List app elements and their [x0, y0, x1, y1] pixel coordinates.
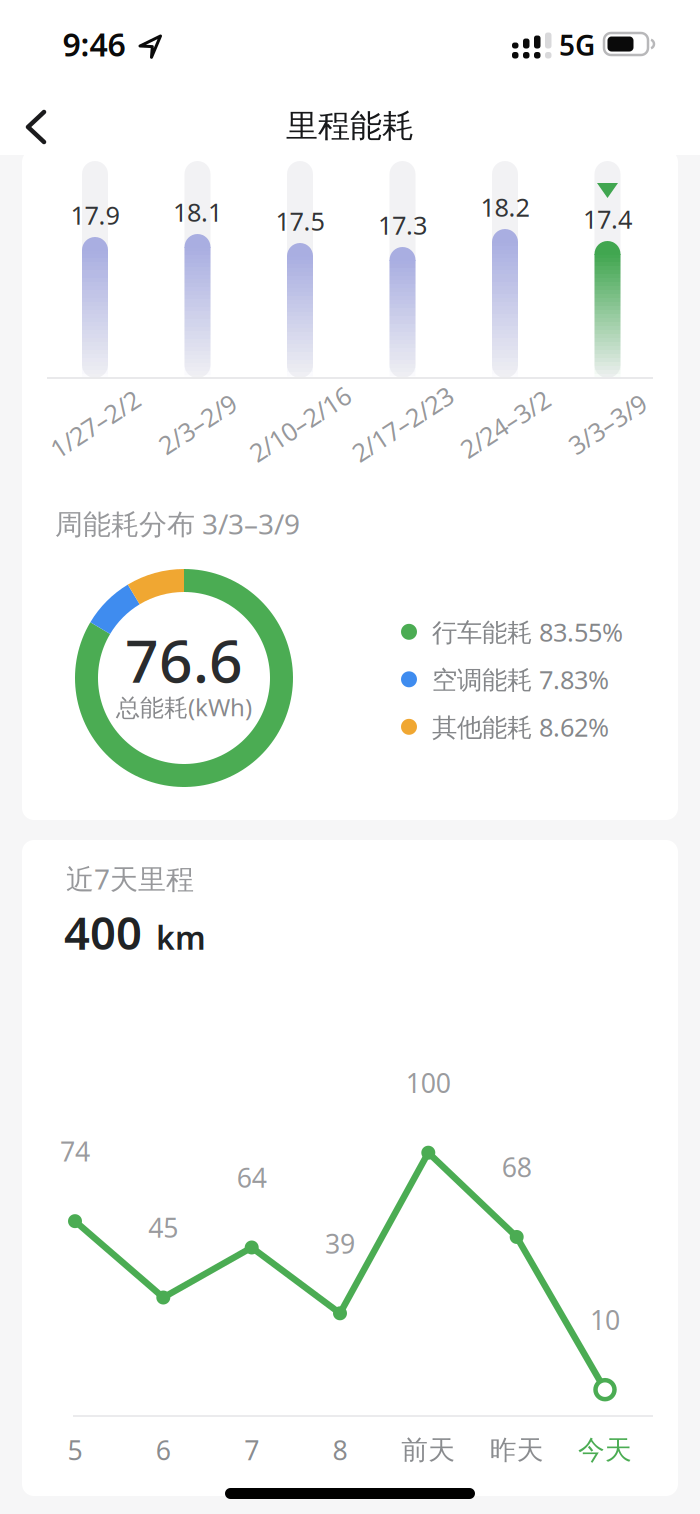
staticText: 里程能耗: [286, 106, 414, 146]
staticText: 68: [502, 1149, 532, 1185]
staticText: 76.6: [125, 621, 243, 699]
staticText: 其他能耗 8.62%: [432, 710, 609, 744]
staticText: 7: [244, 1432, 259, 1468]
staticText: 400: [64, 902, 142, 962]
staticText: 2/17–2/23: [345, 407, 460, 441]
staticText: 45: [148, 1210, 178, 1245]
staticText: 昨天: [490, 1434, 544, 1466]
staticText: 5G: [559, 26, 595, 64]
button[interactable]: Back: [18, 107, 62, 147]
staticText: 10: [590, 1302, 620, 1337]
staticText: 17.3: [378, 208, 427, 242]
staticText: 9:46: [62, 23, 125, 65]
staticText: 2/10–2/16: [242, 407, 357, 441]
staticText: 1/27–2/2: [44, 407, 145, 441]
staticText: 18.2: [480, 190, 529, 224]
staticText: 行车能耗 83.55%: [432, 615, 623, 649]
staticText: 100: [406, 1065, 451, 1100]
staticText: 空调能耗 7.83%: [432, 662, 609, 696]
staticText: 64: [237, 1160, 267, 1195]
staticText: 17.9: [70, 198, 119, 232]
staticText: 8: [332, 1432, 347, 1468]
staticText: 2/24–3/2: [454, 407, 555, 441]
staticText: 39: [325, 1226, 355, 1261]
staticText: 前天: [401, 1434, 455, 1466]
staticText: 近7天里程: [66, 860, 194, 897]
staticText: km: [156, 916, 206, 958]
staticText: 18.1: [173, 195, 222, 229]
staticText: 周能耗分布 3/3–3/9: [55, 505, 300, 542]
staticText: 6: [156, 1432, 171, 1468]
staticText: 5: [67, 1432, 82, 1468]
staticText: 2/3–2/9: [154, 407, 241, 441]
staticText: 74: [60, 1133, 90, 1169]
staticText: 17.5: [275, 204, 324, 238]
staticText: 17.4: [583, 202, 632, 236]
staticText: 3/3–3/9: [564, 407, 651, 441]
staticText: 今天: [578, 1434, 632, 1466]
staticText: 总能耗(kWh): [116, 691, 252, 723]
